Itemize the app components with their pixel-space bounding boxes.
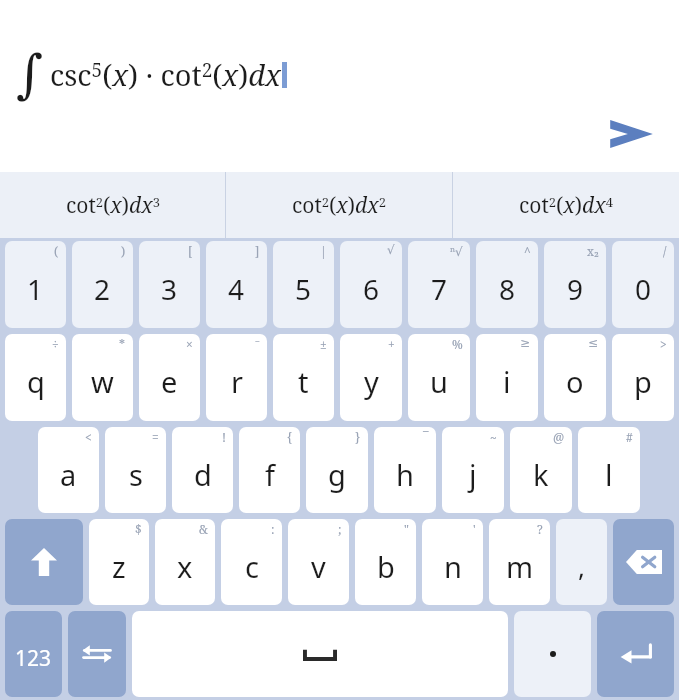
button[interactable]: ~ bbox=[442, 427, 504, 513]
staticText: o bbox=[566, 362, 584, 401]
staticText: ≥ bbox=[520, 336, 531, 350]
button[interactable]: ‾ bbox=[374, 427, 436, 513]
button[interactable] bbox=[514, 611, 591, 697]
button[interactable]: | bbox=[273, 241, 334, 328]
staticText: 9 bbox=[567, 270, 584, 308]
staticText: q bbox=[27, 362, 45, 401]
staticText: ( bbox=[54, 243, 59, 259]
staticText: ] bbox=[255, 243, 260, 259]
staticText: u bbox=[430, 362, 448, 401]
button[interactable]: × bbox=[139, 334, 200, 421]
button[interactable]: Space bbox=[132, 611, 508, 697]
staticText: c bbox=[245, 547, 259, 586]
staticText: i bbox=[503, 362, 511, 401]
staticText: ~ bbox=[490, 429, 497, 445]
staticText: + bbox=[388, 336, 395, 352]
button[interactable]: + bbox=[340, 334, 402, 421]
button[interactable]: ⁿ√ bbox=[408, 241, 470, 328]
staticText: p bbox=[634, 362, 652, 401]
staticText: m bbox=[506, 547, 534, 586]
staticText: # bbox=[626, 429, 633, 445]
button[interactable]: ) bbox=[72, 241, 133, 328]
staticText: & bbox=[199, 521, 208, 537]
staticText: s bbox=[129, 455, 143, 494]
staticText: ∫ bbox=[16, 44, 44, 105]
button[interactable]: " bbox=[355, 519, 416, 605]
staticText: : bbox=[271, 521, 275, 537]
button[interactable]: Backspace bbox=[613, 519, 674, 605]
button[interactable]: x₂ bbox=[544, 241, 606, 328]
staticText: b bbox=[377, 547, 395, 586]
staticText: > bbox=[660, 336, 667, 352]
button[interactable]: Enter bbox=[597, 611, 674, 697]
staticText: ± bbox=[320, 336, 327, 352]
staticText: | bbox=[320, 243, 327, 259]
button[interactable]: 123 bbox=[5, 611, 62, 697]
staticText: ; bbox=[338, 521, 342, 537]
staticText: / bbox=[663, 243, 667, 259]
staticText: ⁻ bbox=[255, 336, 260, 352]
button[interactable]: √ bbox=[340, 241, 402, 328]
button[interactable]: ( bbox=[5, 241, 66, 328]
staticText: y bbox=[364, 362, 379, 401]
staticText: ) bbox=[121, 243, 126, 259]
staticText: k bbox=[533, 455, 549, 494]
staticText: 6 bbox=[363, 270, 380, 308]
button[interactable]: / bbox=[612, 241, 674, 328]
button[interactable]: ≥ bbox=[476, 334, 538, 421]
staticText: @ bbox=[553, 429, 565, 445]
staticText: 7 bbox=[431, 270, 448, 308]
button[interactable]: Switch keyboard bbox=[68, 611, 126, 697]
staticText: n bbox=[444, 547, 462, 586]
staticText: x bbox=[177, 547, 193, 586]
button[interactable]: ÷ bbox=[5, 334, 66, 421]
button[interactable]: < bbox=[38, 427, 99, 513]
button[interactable]: ⁻ bbox=[206, 334, 267, 421]
button[interactable]: cot2(x)dx4 bbox=[453, 172, 679, 238]
staticText: v bbox=[311, 547, 326, 586]
staticText: a bbox=[60, 455, 77, 494]
button[interactable]: { bbox=[239, 427, 300, 513]
button[interactable]: , bbox=[556, 519, 607, 605]
staticText: " bbox=[404, 521, 409, 537]
staticText: % bbox=[452, 336, 463, 352]
staticText: √ bbox=[387, 243, 395, 257]
staticText: 4 bbox=[228, 270, 245, 308]
staticText: } bbox=[355, 429, 361, 445]
staticText: ' bbox=[473, 521, 476, 537]
staticText: × bbox=[186, 336, 193, 352]
button[interactable]: ± bbox=[273, 334, 334, 421]
button[interactable]: @ bbox=[510, 427, 572, 513]
button[interactable]: ≤ bbox=[544, 334, 606, 421]
staticText: g bbox=[328, 455, 346, 494]
button[interactable]: ! bbox=[172, 427, 233, 513]
button[interactable]: > bbox=[612, 334, 674, 421]
button[interactable]: } bbox=[306, 427, 368, 513]
staticText: cot2(x)dx2 bbox=[292, 191, 386, 220]
button[interactable]: [ bbox=[139, 241, 200, 328]
button[interactable]: ; bbox=[288, 519, 349, 605]
button[interactable]: & bbox=[155, 519, 215, 605]
staticText: d bbox=[194, 455, 212, 494]
staticText: * bbox=[119, 336, 126, 352]
button[interactable]: Send bbox=[605, 112, 657, 156]
button[interactable]: ^ bbox=[476, 241, 538, 328]
button[interactable]: # bbox=[578, 427, 640, 513]
button[interactable]: * bbox=[72, 334, 133, 421]
button[interactable]: ' bbox=[422, 519, 483, 605]
button[interactable]: % bbox=[408, 334, 470, 421]
staticText: cot2(x)dx3 bbox=[66, 191, 160, 220]
button[interactable]: ] bbox=[206, 241, 267, 328]
button[interactable]: Shift bbox=[5, 519, 83, 605]
staticText: cot2(x)dx4 bbox=[519, 191, 613, 220]
button[interactable]: cot2(x)dx2 bbox=[226, 172, 452, 238]
staticText: ‾ bbox=[423, 429, 429, 445]
button[interactable]: cot2(x)dx3 bbox=[0, 172, 225, 238]
staticText: < bbox=[85, 429, 92, 445]
button[interactable]: = bbox=[105, 427, 166, 513]
button[interactable]: : bbox=[221, 519, 282, 605]
button[interactable]: ? bbox=[489, 519, 550, 605]
staticText: [ bbox=[188, 243, 193, 259]
staticText: , bbox=[578, 549, 585, 584]
button[interactable]: $ bbox=[89, 519, 149, 605]
